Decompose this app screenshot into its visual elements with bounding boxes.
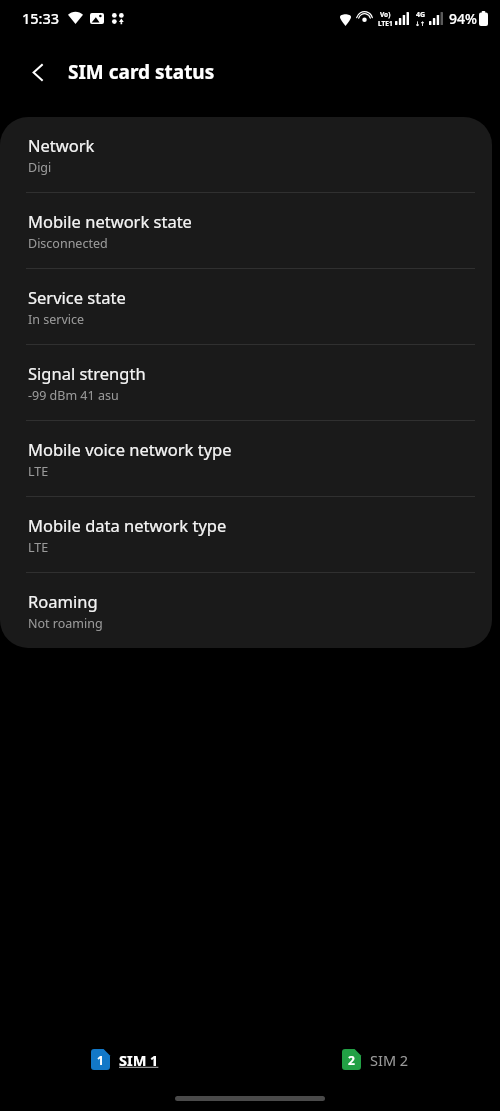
button[interactable]: Back xyxy=(14,48,62,96)
button[interactable]: Mobile voice network type xyxy=(0,421,492,496)
staticText: Mobile data network type xyxy=(28,514,227,536)
staticText: Vo) xyxy=(380,10,391,19)
staticText: Service state xyxy=(28,286,126,308)
staticText: Mobile network state xyxy=(28,210,192,232)
staticText: In service xyxy=(28,311,85,328)
staticText: SIM 1 xyxy=(119,1050,159,1070)
staticText: LTE1 xyxy=(378,19,393,28)
staticText: LTE xyxy=(28,539,49,556)
button[interactable]: Signal strength xyxy=(0,345,492,420)
staticText: Signal strength xyxy=(28,362,146,384)
staticText: 94% xyxy=(449,9,477,28)
staticText: 4G xyxy=(416,10,426,20)
button[interactable]: Mobile data network type xyxy=(0,497,492,572)
staticText: Mobile voice network type xyxy=(28,438,232,460)
staticText: 1 xyxy=(97,1052,104,1068)
staticText: Roaming xyxy=(28,590,98,612)
button[interactable]: Network xyxy=(0,117,492,192)
staticText: ↓↑ xyxy=(415,20,426,27)
staticText: LTE xyxy=(28,463,49,480)
staticText: Network xyxy=(28,134,95,156)
staticText: Not roaming xyxy=(28,615,103,632)
staticText: Digi xyxy=(28,159,52,176)
staticText: 15:33 xyxy=(22,8,60,28)
button[interactable]: 2 xyxy=(334,1045,417,1074)
button[interactable]: Mobile network state xyxy=(0,193,492,268)
staticText: Disconnected xyxy=(28,235,108,252)
button[interactable]: Roaming xyxy=(0,573,492,648)
button[interactable]: 1 xyxy=(83,1045,167,1074)
staticText: -99 dBm 41 asu xyxy=(28,387,119,404)
staticText: SIM 2 xyxy=(370,1050,409,1070)
staticText: 2 xyxy=(348,1052,355,1068)
staticText: SIM card status xyxy=(68,59,215,85)
button[interactable]: Service state xyxy=(0,269,492,344)
